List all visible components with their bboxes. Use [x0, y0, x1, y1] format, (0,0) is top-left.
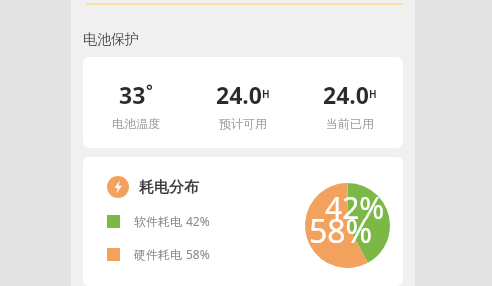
- staticText: 24.0: [323, 79, 369, 110]
- staticText: 24.0: [216, 79, 262, 110]
- button[interactable]: 24.0: [189, 79, 296, 131]
- button[interactable]: 硬件耗电: [107, 246, 210, 262]
- other: Battery usage: [107, 176, 129, 198]
- button[interactable]: 软件耗电: [107, 213, 210, 229]
- staticText: 耗电分布: [139, 178, 199, 197]
- staticText: 33: [119, 79, 146, 110]
- staticText: 软件耗电: [134, 214, 182, 229]
- staticText: 当前已用: [326, 116, 374, 131]
- staticText: 预计可用: [219, 116, 267, 131]
- staticText: 42%: [325, 187, 385, 228]
- staticText: 58%: [309, 209, 373, 253]
- staticText: 58%: [186, 246, 210, 262]
- button[interactable]: Battery usage: [83, 157, 403, 286]
- button[interactable]: 33: [83, 57, 403, 148]
- staticText: 电池温度: [112, 116, 160, 131]
- staticText: 硬件耗电: [134, 247, 182, 262]
- staticText: H: [369, 87, 377, 101]
- staticText: °: [146, 79, 153, 101]
- button[interactable]: 33: [83, 79, 189, 131]
- staticText: 42%: [186, 213, 210, 229]
- button[interactable]: 24.0: [296, 79, 403, 131]
- staticText: H: [262, 87, 270, 101]
- staticText: 电池保护: [83, 31, 139, 49]
